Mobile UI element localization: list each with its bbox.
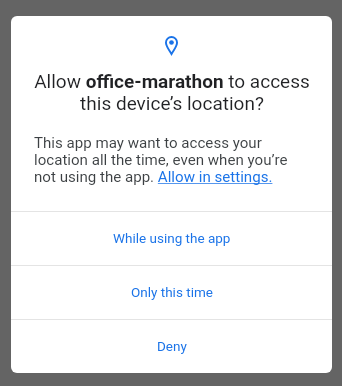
other: Location xyxy=(165,36,178,55)
button[interactable]: While using the app xyxy=(11,212,332,265)
staticText: Allow office-marathon to access this dev… xyxy=(26,70,318,114)
button[interactable]: Allow in settings xyxy=(157,169,274,186)
staticText: This app may want to access your locatio… xyxy=(34,134,304,186)
button[interactable]: Deny xyxy=(11,320,332,373)
staticText: Only this time xyxy=(131,284,213,300)
staticText: Deny xyxy=(157,338,187,354)
staticText: While using the app xyxy=(113,230,231,246)
button[interactable]: Only this time xyxy=(11,266,332,319)
